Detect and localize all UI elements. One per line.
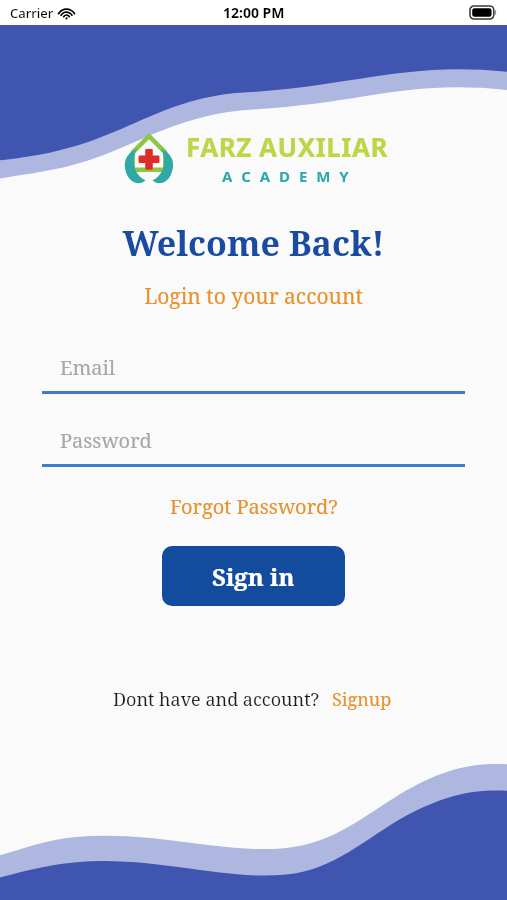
staticText: Login to your account bbox=[144, 282, 363, 311]
staticText: Email bbox=[60, 354, 116, 381]
button[interactable]: Sign in bbox=[162, 546, 345, 606]
staticText: Carrier bbox=[10, 4, 54, 22]
staticText: Sign in bbox=[212, 560, 295, 593]
staticText: 12:00 PM bbox=[223, 3, 285, 22]
button[interactable]: Password bbox=[42, 422, 465, 467]
button[interactable]: Email bbox=[42, 349, 465, 394]
button[interactable]: Signup bbox=[330, 684, 394, 715]
staticText: FARZ AUXILIAR bbox=[186, 129, 388, 164]
button[interactable]: Forgot Password? bbox=[162, 489, 346, 524]
staticText: Password bbox=[60, 427, 152, 454]
staticText: Signup bbox=[332, 687, 392, 712]
staticText: Dont have and account? bbox=[113, 687, 320, 712]
staticText: Forgot Password? bbox=[170, 493, 338, 520]
staticText: Welcome Back! bbox=[122, 220, 385, 266]
staticText: A C A D E M Y bbox=[222, 166, 352, 186]
